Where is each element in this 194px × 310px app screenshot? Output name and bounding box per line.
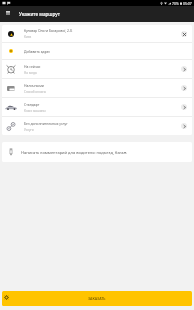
staticText: бульвар Ольги Басарової, 2-Б <box>24 28 73 33</box>
staticText: 70% <box>172 1 179 6</box>
staticText: Наличными <box>24 83 44 88</box>
staticText: Услуги <box>24 128 34 132</box>
staticText: На когда <box>24 71 37 75</box>
staticText: Стандарт <box>24 102 40 107</box>
staticText: Способ оплаты <box>24 90 46 94</box>
button[interactable]: Добавить адрес <box>2 43 192 59</box>
staticText: Класс машины <box>24 109 46 113</box>
button[interactable]: Menu <box>0 6 16 19</box>
staticText: 05:07 <box>183 1 192 6</box>
button[interactable]: Стандарт <box>175 98 192 116</box>
staticText: Добавить адрес <box>24 49 51 54</box>
staticText: На сейчас <box>24 64 41 69</box>
button[interactable]: Без дополнительных услуг <box>2 117 192 135</box>
staticText: Укажите маршрут <box>19 11 60 17</box>
staticText: Киев <box>24 35 32 39</box>
staticText: Написать комментарий для водителя: подъе… <box>21 150 127 155</box>
button[interactable]: На сейчас <box>2 60 192 78</box>
button[interactable]: Стандарт <box>2 98 192 116</box>
button[interactable]: Без дополнительных услуг <box>175 117 192 135</box>
button[interactable]: Наличными <box>175 79 192 97</box>
staticText: Без дополнительных услуг <box>24 121 68 126</box>
button[interactable]: Написать комментарий для водителя: подъе… <box>2 142 192 162</box>
button[interactable]: Наличными <box>2 79 192 97</box>
staticText: ЗАКАЗАТЬ <box>88 296 106 301</box>
button[interactable]: Clear <box>175 25 192 42</box>
button[interactable]: На сейчас <box>175 60 192 78</box>
button[interactable]: ЗАКАЗАТЬ <box>2 291 192 306</box>
button[interactable]: бульвар Ольги Басарової, 2-Б <box>2 25 192 42</box>
